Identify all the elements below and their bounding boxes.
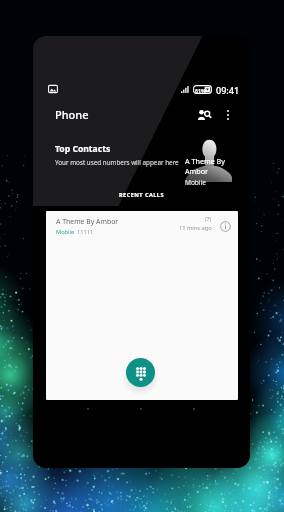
button[interactable]: Home — [131, 399, 151, 419]
staticText: Mobile — [56, 228, 75, 236]
staticText: 61% — [195, 87, 206, 94]
button[interactable]: A Theme By — [184, 139, 232, 182]
staticText: 11 mins ago — [179, 224, 212, 232]
staticText: Ambor — [185, 166, 209, 176]
staticText: 09:41 — [216, 84, 240, 95]
staticText: RECENT CALLS — [119, 191, 164, 199]
staticText: Your most used numbers will appear here — [55, 158, 179, 167]
staticText: Mobile — [185, 178, 206, 187]
staticText: A Theme By — [185, 156, 225, 166]
staticText: Top Contacts — [55, 143, 111, 155]
staticText: 11111 — [77, 228, 94, 236]
staticText: Phone — [55, 107, 89, 122]
button[interactable]: A Theme By Ambor — [46, 211, 238, 241]
button[interactable]: Call details — [216, 217, 234, 235]
button[interactable]: Back — [78, 399, 98, 419]
staticText: A Theme By Ambor — [56, 217, 119, 226]
button[interactable]: More options — [217, 104, 239, 126]
button[interactable]: Open dialpad — [126, 358, 155, 387]
staticText: (7) — [205, 215, 212, 222]
button[interactable]: Search contacts — [193, 104, 215, 126]
button[interactable]: Recents — [184, 399, 204, 419]
